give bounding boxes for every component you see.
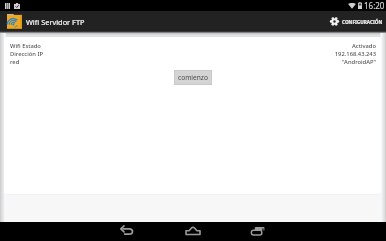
staticText: CONFIGURACIÓN bbox=[342, 19, 383, 25]
button[interactable]: Recent apps bbox=[248, 222, 268, 241]
button[interactable]: Home bbox=[183, 222, 203, 241]
staticText: Wifi Servidor FTP bbox=[26, 17, 85, 27]
staticText: comienzo bbox=[178, 73, 208, 82]
button[interactable]: Back bbox=[118, 222, 138, 241]
staticText: 16:20 bbox=[364, 0, 385, 11]
staticText: Activado 192.168.43.243 "AndroidAP" bbox=[334, 42, 376, 66]
button[interactable]: CONFIGURACIÓN bbox=[330, 17, 386, 26]
staticText: Wifi Estado Dirección IP red bbox=[10, 42, 43, 66]
button[interactable]: comienzo bbox=[174, 70, 212, 85]
